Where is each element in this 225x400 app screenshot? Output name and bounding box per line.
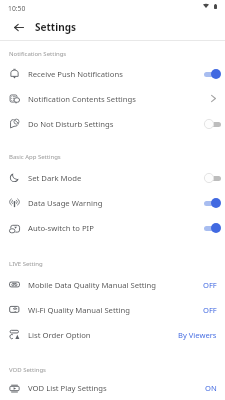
button[interactable]: Back: [8, 17, 29, 38]
button[interactable]: OFF: [203, 272, 217, 297]
button[interactable]: Turn off: [199, 61, 225, 86]
button[interactable]: Open Notification Contents Settings: [202, 86, 225, 111]
staticText: Set Dark Mode: [28, 173, 199, 183]
button[interactable]: Receive Push Notifications: [0, 61, 225, 86]
button[interactable]: Notification Contents Settings: [0, 86, 225, 111]
button[interactable]: List Order Option: [0, 322, 225, 347]
button[interactable]: Auto-switch to PIP: [0, 215, 225, 240]
staticText: VOD List Play Settings: [28, 383, 205, 393]
staticText: OFF: [203, 280, 217, 290]
button[interactable]: VOD List Play Settings: [0, 376, 225, 400]
staticText: Data Usage Warning: [28, 198, 199, 208]
staticText: Settings: [35, 20, 76, 34]
staticText: Receive Push Notifications: [28, 69, 199, 79]
button[interactable]: Data Usage Warning: [0, 190, 225, 215]
button[interactable]: Wi-Fi Quality Manual Setting: [0, 297, 225, 322]
staticText: Mobile Data Quality Manual Setting: [28, 280, 203, 290]
staticText: Auto-switch to PIP: [28, 223, 199, 233]
staticText: Wi-Fi Quality Manual Setting: [28, 305, 203, 315]
button[interactable]: Do Not Disturb Settings: [0, 111, 225, 136]
button[interactable]: OFF: [203, 297, 217, 322]
button[interactable]: Turn off: [199, 215, 225, 240]
staticText: Notification Contents Settings: [28, 94, 202, 104]
button[interactable]: Set Dark Mode: [0, 165, 225, 190]
staticText: VOD Settings: [9, 366, 46, 374]
button[interactable]: ON: [205, 376, 217, 400]
staticText: OFF: [203, 305, 217, 315]
button[interactable]: Turn off: [199, 190, 225, 215]
staticText: Basic App Settings: [9, 153, 61, 161]
staticText: LIVE Setting: [9, 260, 43, 268]
button[interactable]: Turn on: [199, 111, 225, 136]
button[interactable]: By Viewers: [178, 322, 217, 347]
button[interactable]: Turn on: [199, 165, 225, 190]
staticText: Do Not Disturb Settings: [28, 119, 199, 129]
staticText: List Order Option: [28, 330, 178, 340]
button[interactable]: Mobile Data Quality Manual Setting: [0, 272, 225, 297]
staticText: Notification Settings: [9, 50, 67, 58]
staticText: ON: [205, 383, 217, 393]
staticText: By Viewers: [178, 330, 217, 340]
staticText: 10:50: [8, 4, 26, 13]
